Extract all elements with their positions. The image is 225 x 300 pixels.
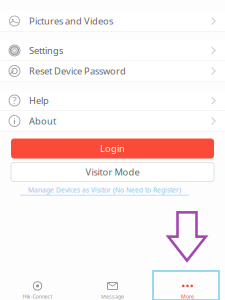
staticText: Settings — [29, 44, 63, 57]
button[interactable]: Login — [11, 138, 214, 158]
button[interactable]: Reset Device Password — [0, 61, 225, 81]
staticText: Login — [100, 142, 125, 155]
staticText: Hik-Connect — [22, 293, 52, 300]
staticText: More — [181, 293, 194, 300]
staticText: Reset Device Password — [29, 65, 126, 77]
button[interactable]: More — [150, 266, 225, 300]
staticText: Message — [101, 293, 124, 300]
button[interactable]: ? — [0, 90, 225, 110]
button[interactable]: Message — [75, 266, 150, 300]
staticText: Pictures and Videos — [29, 15, 113, 27]
button[interactable]: Visitor Mode — [11, 162, 214, 181]
button[interactable]: Hik-Connect — [0, 266, 75, 300]
staticText: Help — [29, 94, 49, 107]
button[interactable]: About — [0, 111, 225, 131]
staticText: About — [29, 115, 56, 127]
staticText: ? — [12, 94, 16, 107]
staticText: Manage Devices as Visitor (No Need to Re… — [28, 185, 181, 194]
staticText: Visitor Mode — [85, 166, 139, 178]
button[interactable]: Manage Devices as Visitor (No Need to Re… — [20, 185, 189, 195]
button[interactable]: Settings — [0, 40, 225, 60]
button[interactable]: Pictures and Videos — [0, 11, 225, 31]
